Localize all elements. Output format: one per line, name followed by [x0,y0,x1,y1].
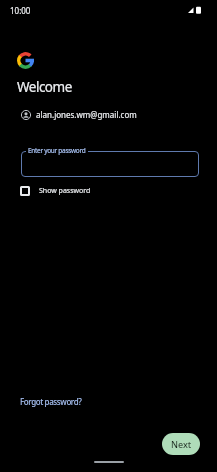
button[interactable]: alan.jones.wm@gmail.com [21,109,137,120]
staticText: Next [171,438,192,450]
staticText: Welcome [17,78,72,96]
button[interactable] [21,151,199,177]
staticText: Show password [39,186,91,196]
button[interactable]: Forgot password? [20,396,82,407]
button[interactable]: Show password [20,186,91,196]
staticText: Enter your password [28,146,86,155]
staticText: 10:00 [10,5,31,16]
staticText: alan.jones.wm@gmail.com [36,109,137,120]
button[interactable]: Next [162,433,200,455]
